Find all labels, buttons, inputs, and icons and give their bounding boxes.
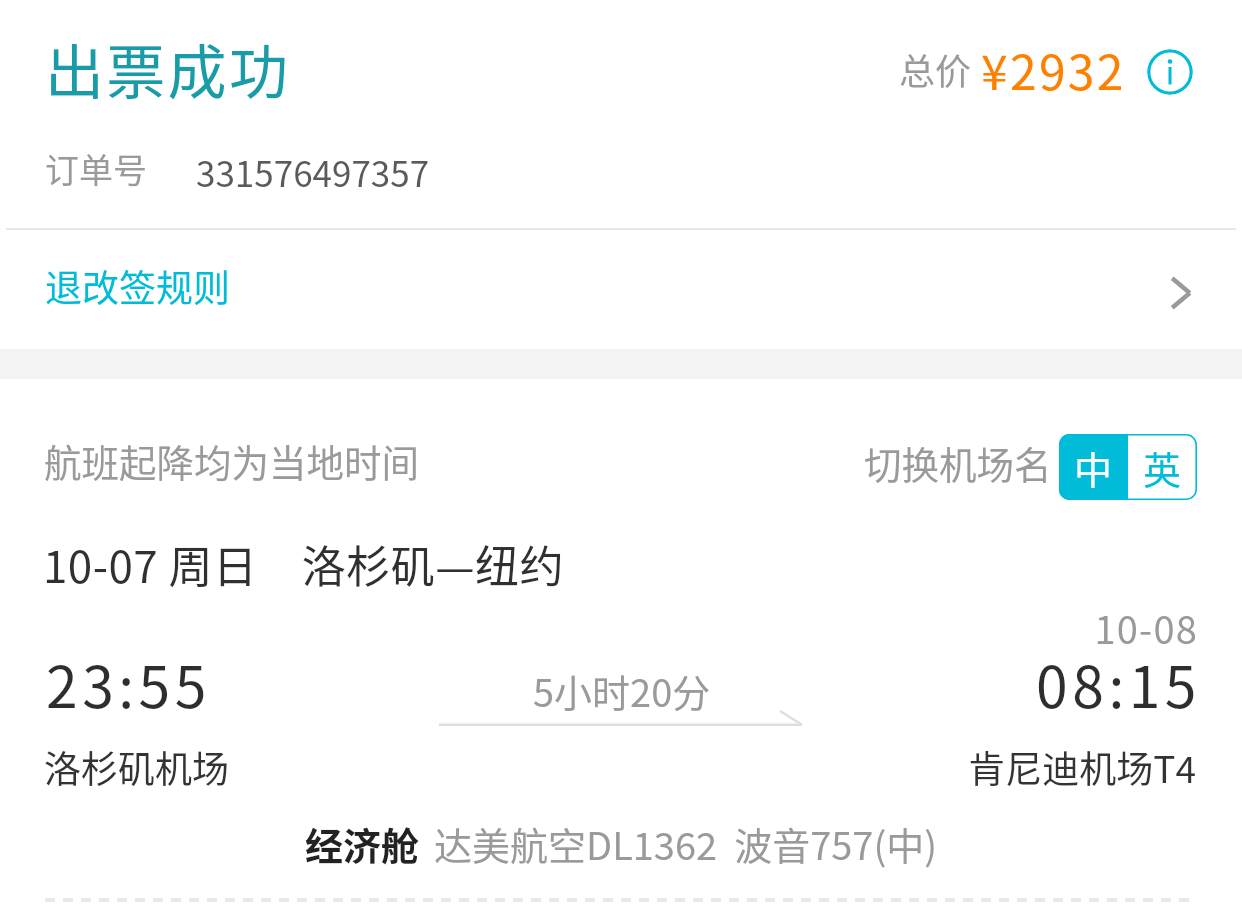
staticText: 英 [1143, 440, 1182, 495]
staticText: 达美航空DL1362 波音757(中) [434, 816, 938, 871]
staticText: 5小时20分 [533, 663, 711, 718]
button[interactable]: 价格明细 [1147, 49, 1193, 95]
staticText: 经济舱 [305, 816, 420, 871]
staticText: 退改签规则 [45, 259, 230, 313]
staticText: 航班起降均为当地时间 [44, 433, 419, 487]
staticText: 切换机场名 [864, 435, 1052, 489]
staticText: 中 [1074, 440, 1113, 495]
other: 查看退改签规则 [1170, 276, 1192, 310]
staticText: 08:15 [1036, 642, 1201, 725]
staticText: 10-08 [1094, 600, 1198, 655]
button[interactable]: 中 [1059, 434, 1197, 500]
staticText: ¥2932 [981, 34, 1126, 104]
staticText: 肯尼迪机场T4 [968, 740, 1196, 794]
staticText: 洛杉矶机场 [44, 740, 229, 794]
staticText: 10-07 周日 洛杉矶—纽约 [43, 532, 564, 596]
staticText: 331576497357 [196, 146, 430, 197]
staticText: 23:55 [46, 642, 211, 725]
staticText: 总价 [899, 43, 972, 95]
button[interactable]: 退改签规则 [0, 230, 1242, 349]
staticText: 订单号 [45, 144, 147, 193]
staticText: 出票成功 [45, 26, 291, 111]
